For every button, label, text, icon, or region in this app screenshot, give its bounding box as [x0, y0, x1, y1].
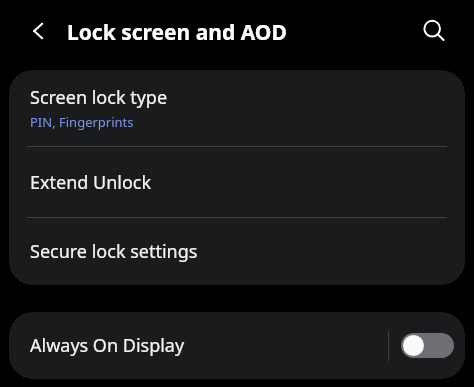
button[interactable]: Search — [412, 9, 456, 53]
button[interactable]: Secure lock settings — [9, 218, 465, 285]
staticText: Secure lock settings — [30, 239, 198, 264]
button[interactable]: Always On Display — [9, 312, 388, 379]
button[interactable]: Always On Display toggle — [389, 312, 465, 379]
button[interactable]: Screen lock type — [9, 70, 465, 146]
button[interactable]: Back — [18, 10, 60, 52]
button[interactable]: Extend Unlock — [9, 147, 465, 217]
staticText: Always On Display — [30, 333, 185, 358]
staticText: Lock screen and AOD — [67, 18, 287, 47]
staticText: PIN, Fingerprints — [30, 113, 134, 131]
staticText: Screen lock type — [30, 85, 168, 110]
staticText: Extend Unlock — [30, 170, 152, 195]
